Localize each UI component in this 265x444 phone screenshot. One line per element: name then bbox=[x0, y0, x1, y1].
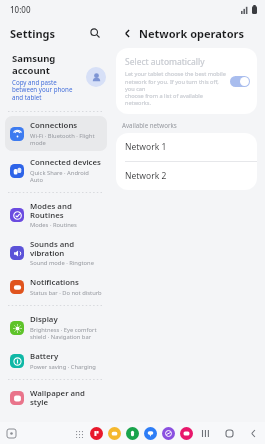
staticText: 10:00 bbox=[10, 4, 31, 15]
staticText: Brightness · Eye comfort shield · Naviga… bbox=[30, 326, 97, 341]
staticText: Battery bbox=[30, 351, 59, 362]
staticText: Quick Share · Android Auto bbox=[30, 169, 103, 184]
button[interactable]: Recent app bbox=[4, 426, 18, 440]
staticText: Power saving · Charging bbox=[30, 363, 96, 371]
button[interactable]: Wallpaper and style bbox=[5, 384, 107, 411]
button[interactable]: Recents bbox=[199, 427, 211, 439]
staticText: Wallpaper and style bbox=[30, 388, 103, 407]
button[interactable]: App 1 bbox=[108, 427, 121, 440]
button[interactable]: Sounds and vibration bbox=[5, 235, 107, 271]
staticText: Notifications bbox=[30, 277, 79, 288]
button[interactable]: Home bbox=[223, 427, 235, 439]
staticText: Sounds and vibration bbox=[30, 239, 75, 258]
staticText: Connections bbox=[30, 120, 78, 131]
button[interactable]: Connected devices bbox=[5, 153, 107, 188]
staticText: Let your tablet choose the best mobile n… bbox=[125, 70, 226, 106]
staticText: Select automatically bbox=[125, 56, 205, 68]
button[interactable]: Select automatically bbox=[116, 48, 257, 114]
button[interactable]: App 2 bbox=[126, 427, 139, 440]
button[interactable]: Connections bbox=[5, 116, 107, 151]
button[interactable] bbox=[230, 76, 250, 87]
button[interactable]: Samsung account bbox=[0, 48, 112, 108]
button[interactable]: App 3 bbox=[144, 427, 157, 440]
button[interactable]: Back bbox=[247, 427, 259, 439]
button[interactable]: App 4 bbox=[162, 427, 175, 440]
staticText: Copy and paste between your phone and ta… bbox=[12, 78, 73, 102]
staticText: Samsung account bbox=[12, 52, 56, 76]
button[interactable]: Notifications bbox=[5, 273, 107, 301]
button[interactable]: App 5 bbox=[180, 427, 193, 440]
button[interactable]: App 0 bbox=[90, 427, 103, 440]
staticText: Modes and Routines bbox=[30, 201, 103, 220]
staticText: Display bbox=[30, 314, 58, 325]
button[interactable]: Battery bbox=[5, 347, 107, 375]
staticText: Settings bbox=[10, 26, 86, 41]
staticText: Wi-Fi · Bluetooth · Flight mode bbox=[30, 132, 95, 147]
button[interactable]: Search bbox=[86, 24, 104, 42]
button[interactable]: Modes and Routines bbox=[5, 197, 107, 233]
button[interactable]: Display bbox=[5, 310, 107, 345]
button[interactable]: Network 2 bbox=[116, 162, 257, 190]
staticText: Modes · Routines bbox=[30, 221, 77, 229]
button[interactable]: Network 1 bbox=[116, 133, 257, 161]
staticText: Network 2 bbox=[125, 170, 167, 182]
staticText: Connected devices bbox=[30, 157, 101, 168]
staticText: Sound mode · Ringtone bbox=[30, 259, 94, 267]
button[interactable]: Back bbox=[118, 24, 136, 42]
staticText: Network operators bbox=[139, 26, 244, 41]
staticText: Status bar · Do not disturb bbox=[30, 289, 102, 297]
staticText: Network 1 bbox=[125, 141, 167, 153]
staticText: Available networks bbox=[122, 121, 177, 129]
button[interactable]: All apps bbox=[73, 428, 85, 440]
